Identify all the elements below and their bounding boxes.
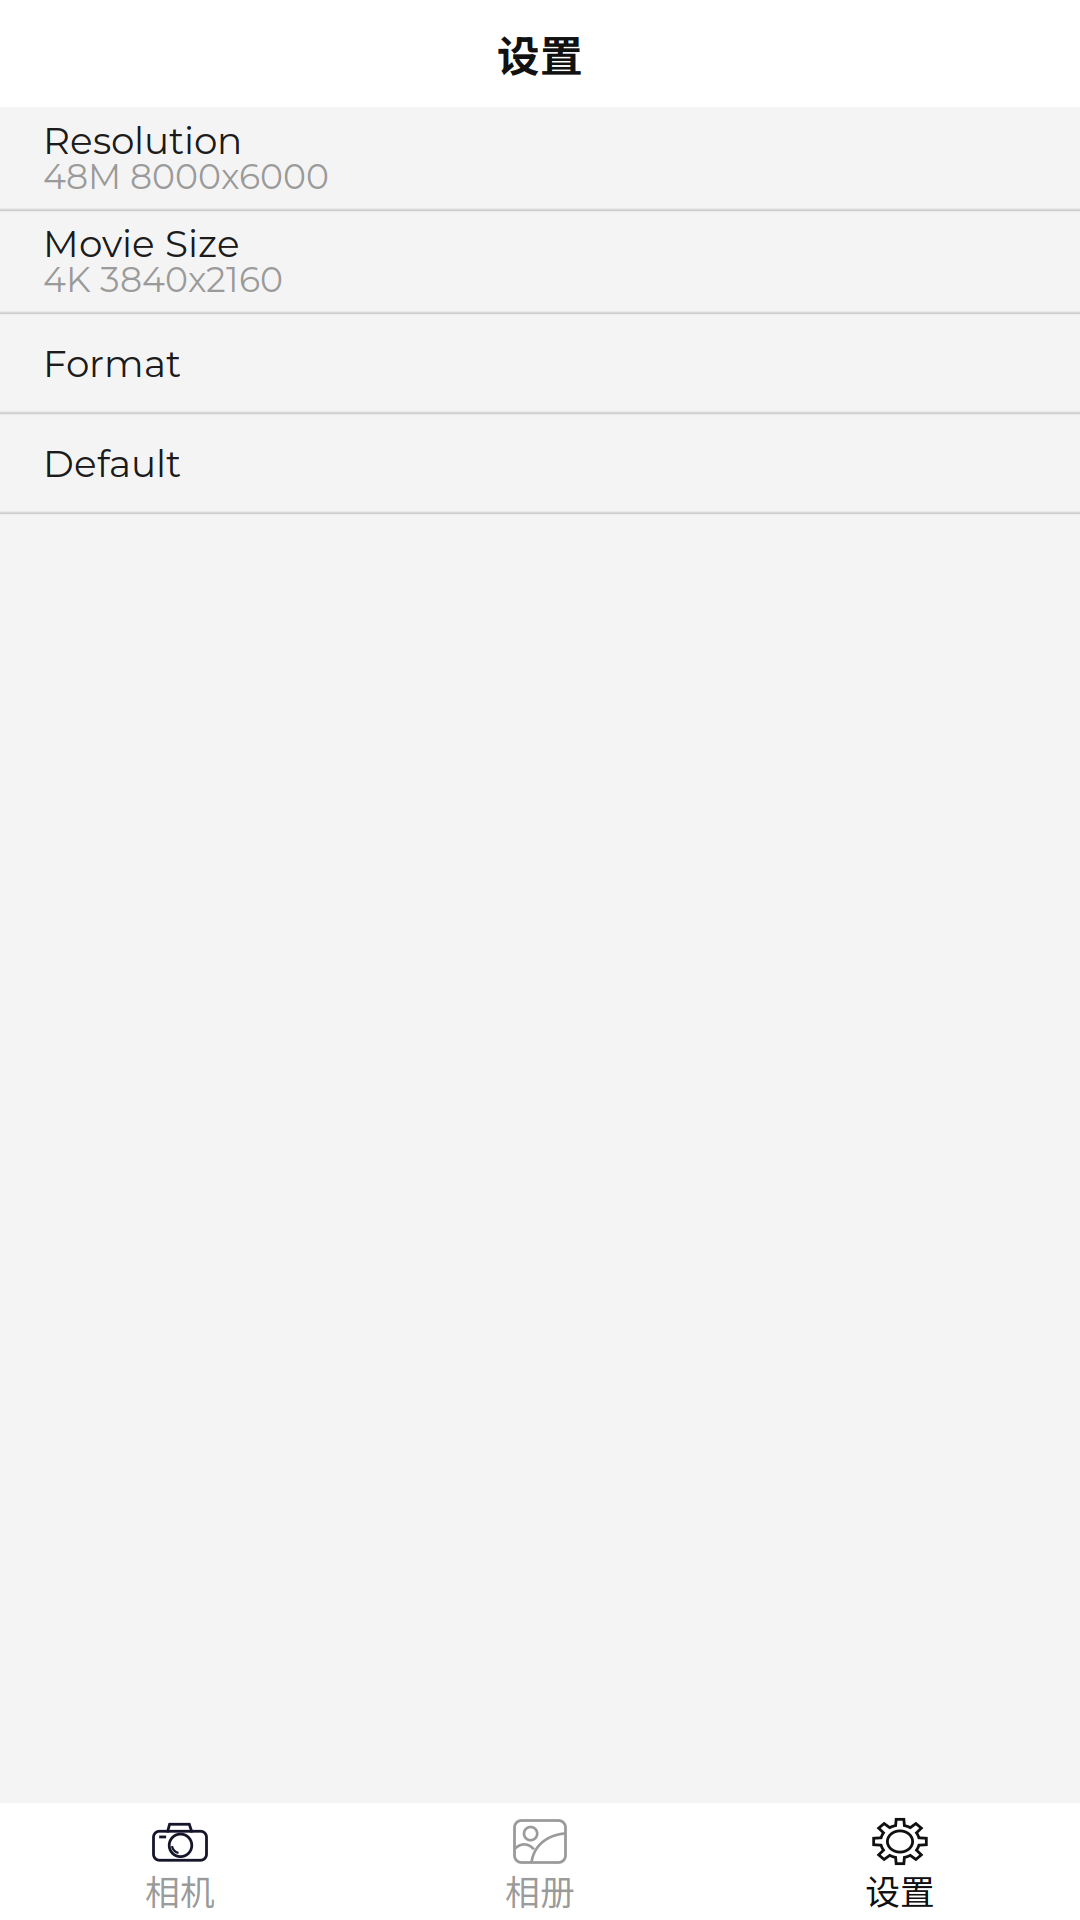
staticText: Resolution [43, 118, 242, 163]
staticText: Movie Size [43, 221, 240, 266]
staticText: 设置 [865, 1865, 935, 1915]
staticText: Format [43, 341, 181, 386]
staticText: 相机 [145, 1865, 215, 1915]
button[interactable]: Default [0, 413, 1080, 513]
button[interactable]: Movie Size [0, 210, 1080, 313]
button[interactable]: 相册 [360, 1803, 720, 1920]
staticText: 设置 [497, 23, 583, 84]
staticText: 4K 3840x2160 [43, 258, 283, 301]
button[interactable]: Format [0, 313, 1080, 413]
button[interactable]: 设置 [720, 1803, 1080, 1920]
staticText: 48M 8000x6000 [43, 155, 329, 198]
staticText: Default [43, 441, 181, 486]
staticText: 相册 [505, 1865, 575, 1915]
button[interactable]: 相机 [0, 1803, 360, 1920]
button[interactable]: Resolution [0, 107, 1080, 210]
